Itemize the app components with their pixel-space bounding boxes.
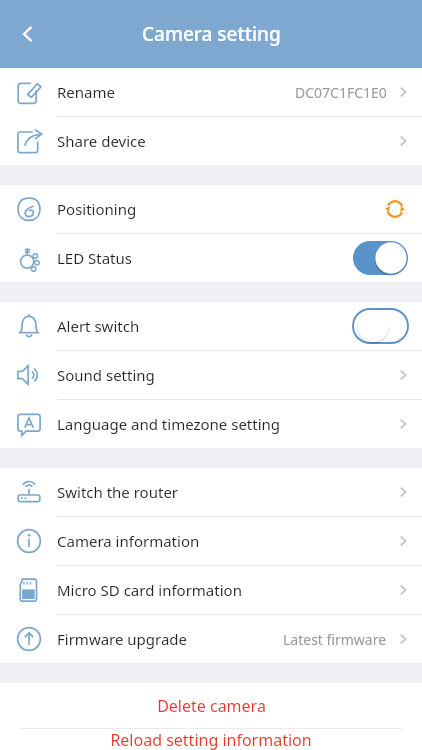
staticText: Delete camera (157, 695, 266, 717)
button[interactable]: Language and timezone setting (0, 400, 422, 448)
button[interactable]: Alert switch toggle (353, 309, 408, 343)
button[interactable]: Back (6, 12, 50, 56)
staticText: DC07C1FC1E0 (295, 83, 387, 102)
staticText: Latest firmware (283, 630, 387, 649)
staticText: Rename (57, 82, 115, 102)
staticText: Language and timezone setting (57, 414, 281, 434)
staticText: Positioning (57, 199, 137, 219)
button[interactable]: Alert switch (0, 302, 422, 350)
button[interactable]: Camera information (0, 517, 422, 565)
button[interactable]: Delete camera (0, 683, 422, 728)
button[interactable]: Switch the router (0, 468, 422, 516)
staticText: Micro SD card information (57, 580, 242, 600)
staticText: Switch the router (57, 482, 179, 502)
staticText: Firmware upgrade (57, 629, 188, 649)
staticText: Reload setting information (110, 729, 312, 750)
button[interactable]: LED Status toggle (353, 241, 408, 275)
button[interactable]: Rename (0, 68, 422, 116)
button[interactable]: Sound setting (0, 351, 422, 399)
other: Refresh positioning (382, 196, 408, 222)
button[interactable]: Share device (0, 117, 422, 165)
staticText: Alert switch (57, 316, 140, 336)
staticText: Sound setting (57, 365, 155, 385)
button[interactable]: LED Status (0, 234, 422, 282)
staticText: Camera setting (142, 21, 281, 47)
staticText: Camera information (57, 531, 200, 551)
staticText: LED Status (57, 248, 132, 268)
button[interactable]: Positioning (0, 185, 422, 233)
button[interactable]: Reload setting information (0, 729, 422, 750)
button[interactable]: Micro SD card information (0, 566, 422, 614)
staticText: Share device (57, 131, 146, 151)
button[interactable]: Firmware upgrade (0, 615, 422, 663)
